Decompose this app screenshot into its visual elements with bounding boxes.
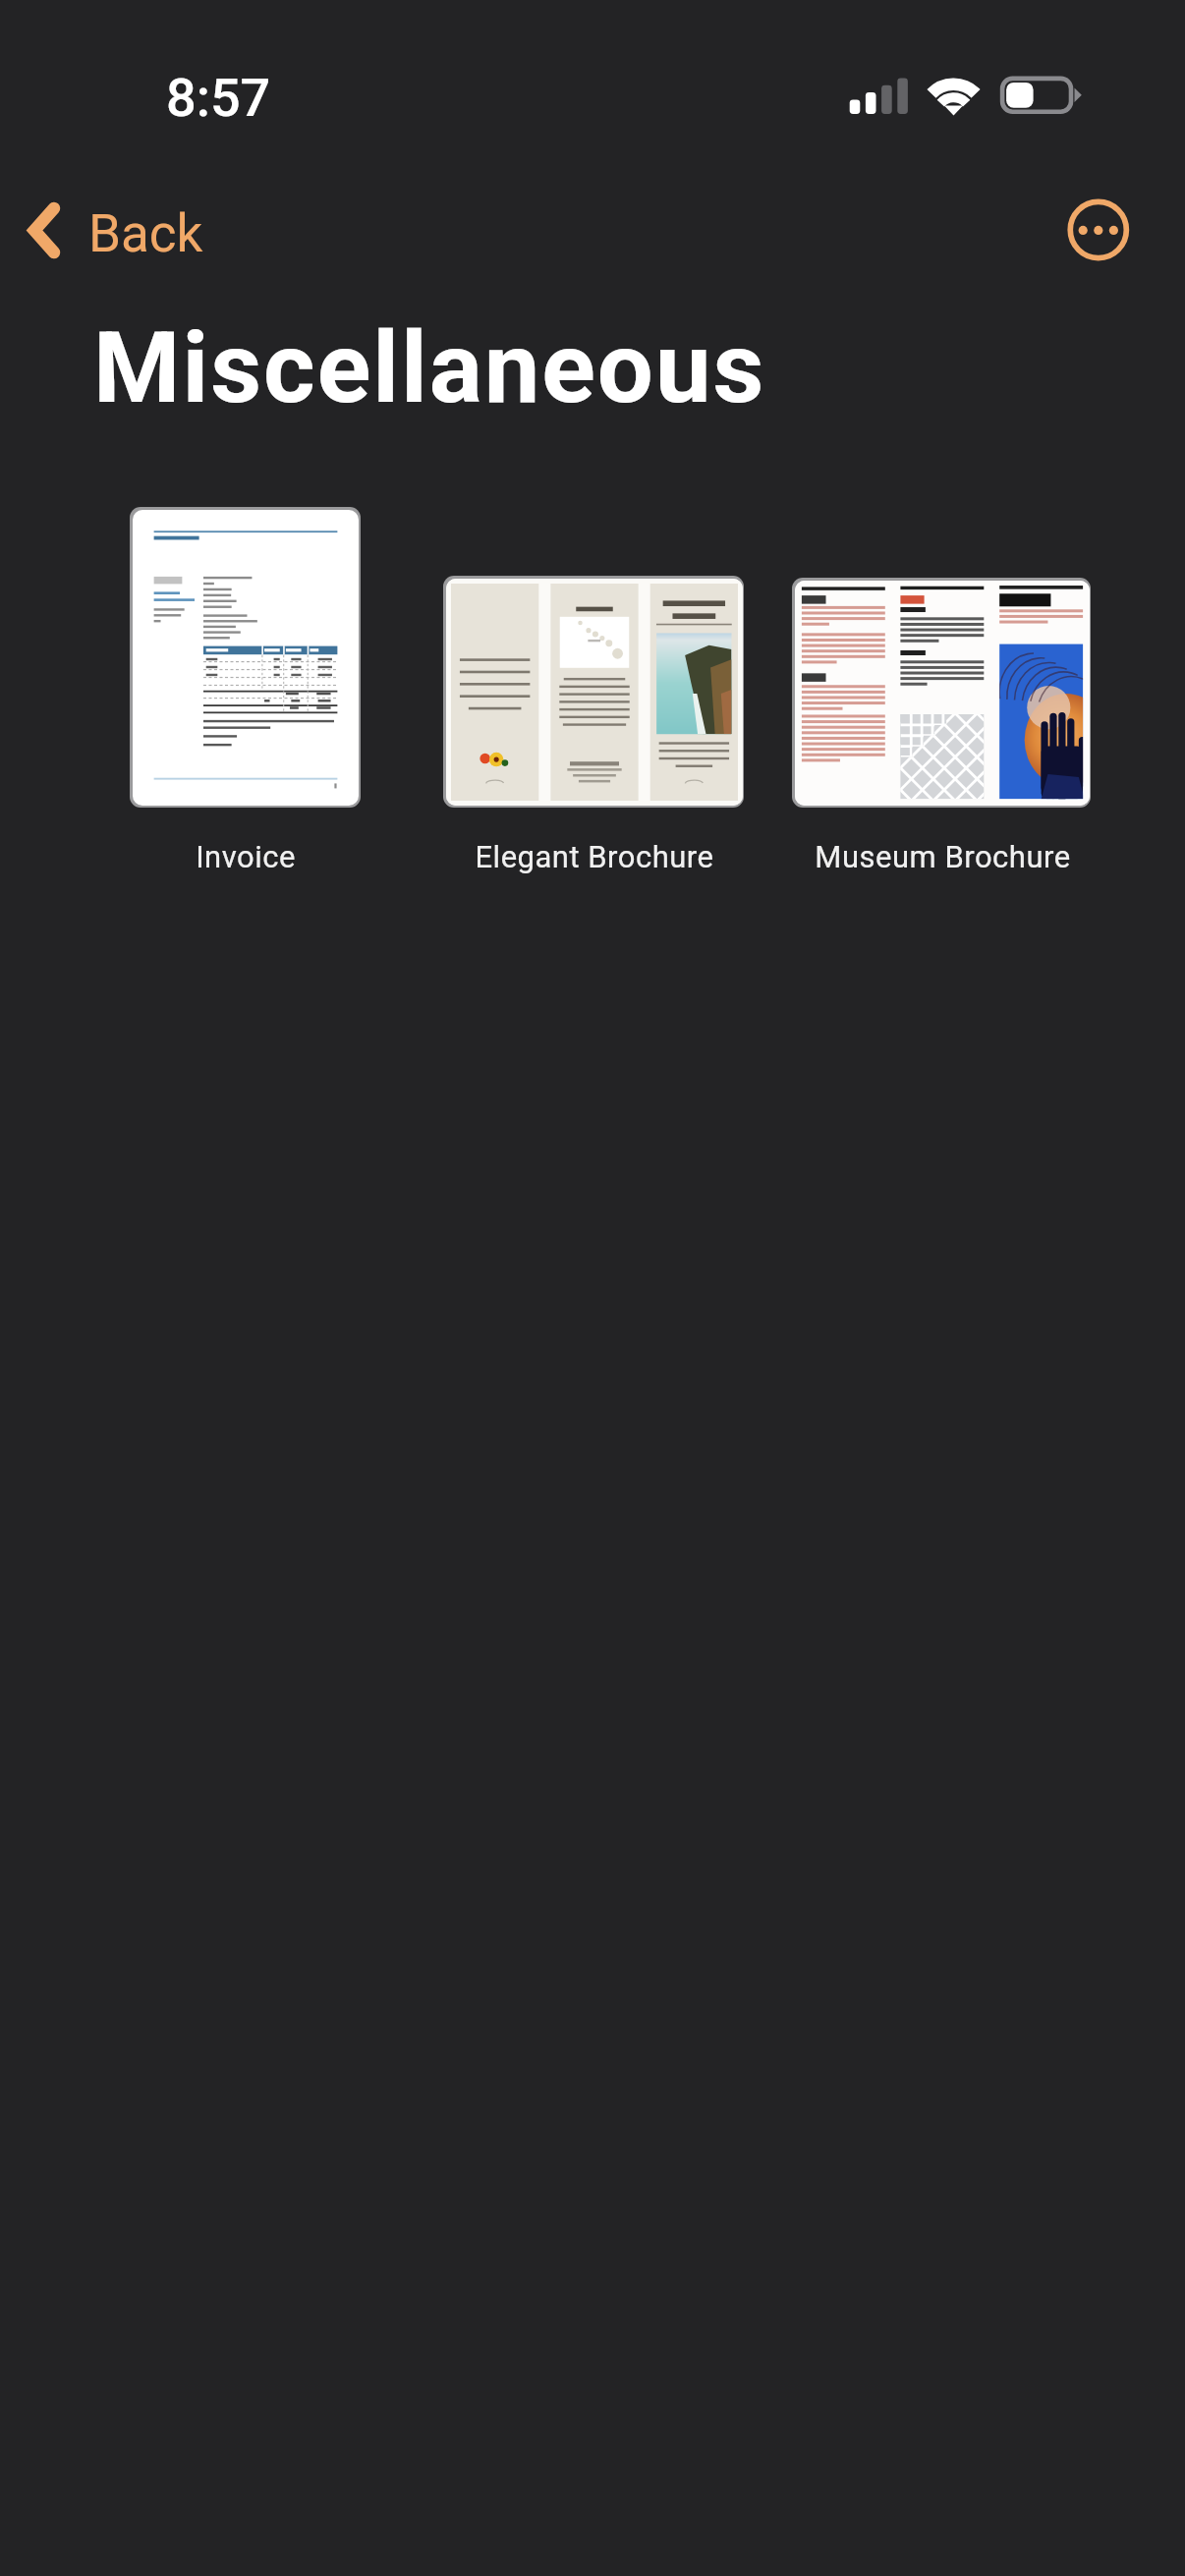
staticText: 8:57	[166, 67, 271, 129]
staticText: Elegant Brochure	[475, 839, 714, 874]
button[interactable]: More options	[1063, 195, 1134, 265]
button[interactable]: Museum Brochure	[792, 578, 1091, 869]
button[interactable]: Elegant Brochure	[443, 576, 744, 869]
staticText: Back	[88, 203, 203, 264]
button[interactable]: Invoice	[130, 507, 361, 869]
staticText: Museum Brochure	[815, 839, 1071, 874]
staticText: Miscellaneous	[93, 309, 766, 425]
button[interactable]: Back	[8, 200, 201, 269]
staticText: Invoice	[196, 839, 296, 874]
